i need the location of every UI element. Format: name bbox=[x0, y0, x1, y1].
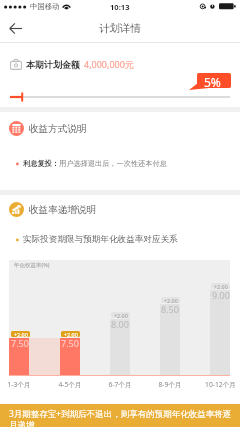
staticText: 中国移动 bbox=[30, 2, 60, 11]
staticText: 利息复投： bbox=[23, 159, 59, 168]
staticText: 9.00 bbox=[212, 289, 230, 301]
staticText: +2.00 bbox=[214, 283, 228, 289]
staticText: 实际投资期限与预期年化收益率对应关系 bbox=[23, 234, 178, 245]
staticText: 用户选择退出后，一次性还本付息 bbox=[59, 159, 167, 168]
staticText: +2.00 bbox=[64, 331, 78, 337]
staticText: 3月期整存宝+到期后不退出，则享有的预期年化收益率将逐月递增 bbox=[9, 408, 234, 427]
staticText: 年化收益率(%) bbox=[14, 261, 50, 269]
staticText: 8.50 bbox=[161, 303, 179, 315]
staticText: 1-3个月 bbox=[7, 380, 31, 389]
staticText: 8-9个月 bbox=[158, 380, 182, 389]
staticText: 收益率递增说明 bbox=[29, 204, 97, 216]
staticText: 7.50 bbox=[11, 337, 29, 349]
staticText: 4-5个月 bbox=[58, 380, 82, 389]
staticText: 收益方式说明 bbox=[29, 123, 87, 135]
staticText: 8.00 bbox=[111, 318, 129, 330]
staticText: +2.00 bbox=[164, 297, 178, 303]
button[interactable]: Back bbox=[0, 15, 30, 42]
staticText: +2.00 bbox=[114, 312, 128, 318]
staticText: 5% bbox=[204, 74, 221, 90]
button[interactable]: 3月期整存宝+到期后不退出，则享有的预期年化收益率将逐月递增 bbox=[0, 404, 240, 427]
staticText: 10:13 bbox=[110, 2, 130, 12]
staticText: 10-12个月 bbox=[205, 380, 236, 389]
staticText: 7.50 bbox=[61, 337, 79, 349]
staticText: 计划详情 bbox=[99, 22, 141, 35]
staticText: 本期计划金额 bbox=[26, 59, 80, 70]
staticText: 6-7个月 bbox=[108, 380, 132, 389]
staticText: +2.00 bbox=[14, 331, 28, 337]
staticText: 4,000,000元 bbox=[84, 58, 134, 70]
